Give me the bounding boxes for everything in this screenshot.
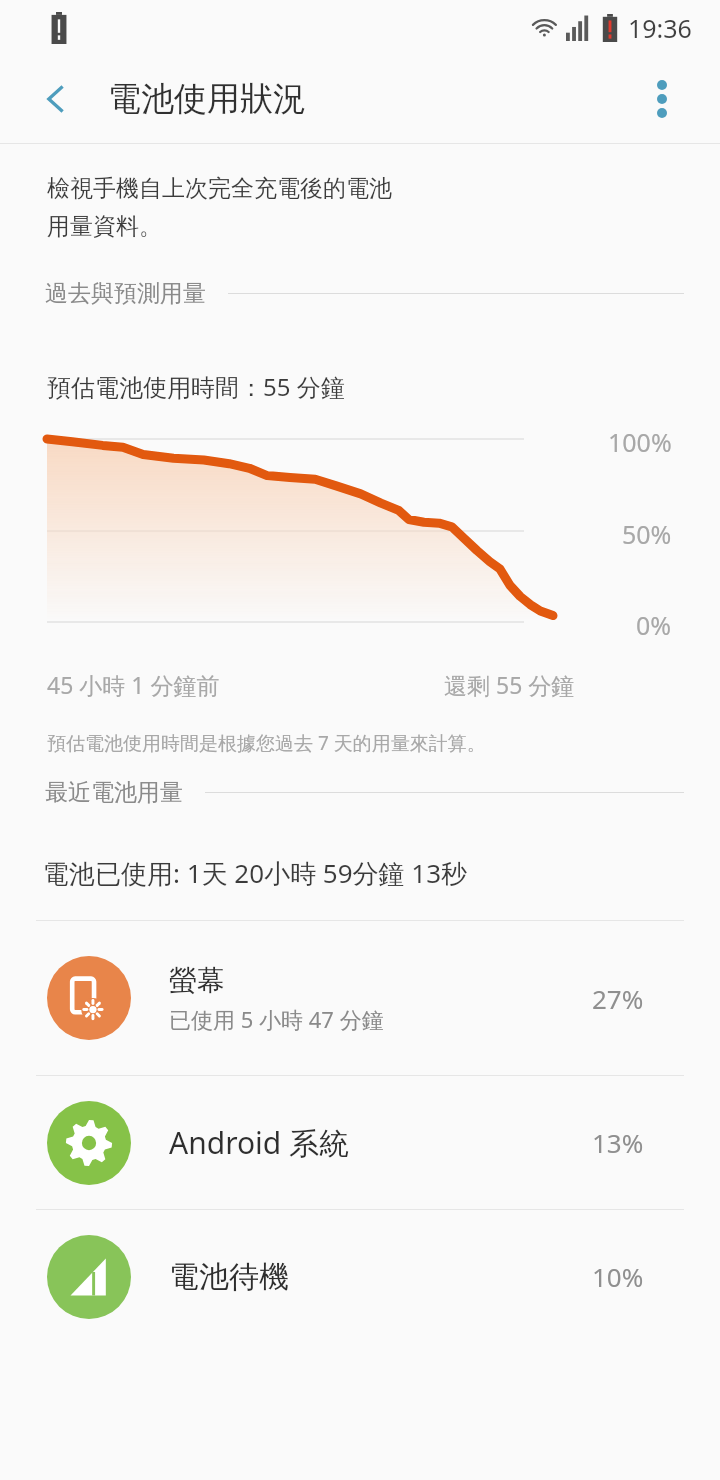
- staticText: 100%: [608, 425, 672, 459]
- staticText: 45 小時 1 分鐘前: [47, 669, 220, 700]
- staticText: 螢幕: [169, 963, 225, 998]
- button[interactable]: Back: [24, 67, 88, 131]
- button[interactable]: 螢幕: [0, 921, 720, 1075]
- staticText: 50%: [622, 517, 672, 551]
- staticText: 電池已使用: 1天 20小時 59分鐘 13秒: [43, 855, 468, 891]
- staticText: 最近電池用量: [45, 778, 183, 807]
- button[interactable]: More options: [630, 67, 694, 131]
- button[interactable]: Android 系統: [0, 1076, 720, 1209]
- staticText: 過去與預測用量: [45, 279, 206, 308]
- staticText: 電池使用狀況: [108, 78, 306, 120]
- staticText: 已使用 5 小時 47 分鐘: [169, 1004, 384, 1034]
- staticText: 電池待機: [169, 1258, 289, 1296]
- staticText: 預估電池使用時間是根據您過去 7 天的用量來計算。: [47, 730, 486, 756]
- staticText: 27%: [592, 981, 672, 1016]
- staticText: 0%: [636, 608, 672, 642]
- staticText: 還剩 55 分鐘: [444, 669, 575, 700]
- staticText: 13%: [592, 1125, 672, 1160]
- staticText: 檢視手機自上次完全充電後的電池 用量資料。: [47, 174, 392, 241]
- staticText: Android 系統: [169, 1122, 350, 1163]
- staticText: 19:36: [628, 11, 692, 45]
- staticText: 10%: [592, 1259, 672, 1294]
- staticText: 預估電池使用時間：55 分鐘: [47, 370, 345, 403]
- button[interactable]: 電池待機: [0, 1210, 720, 1343]
